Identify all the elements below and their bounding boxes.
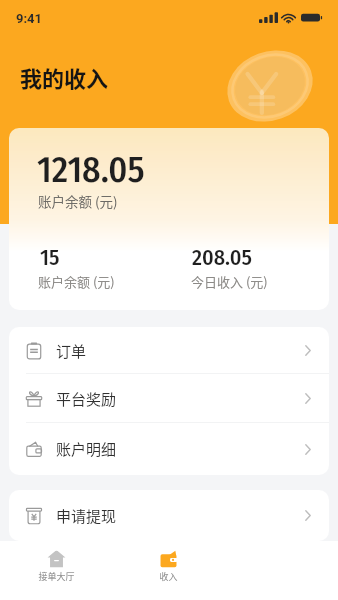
button[interactable]: 订单 — [9, 327, 329, 374]
staticText: 账户余额 (元) — [38, 272, 115, 291]
staticText: 平台奖励 — [56, 388, 117, 410]
staticText: 我的收入 — [20, 61, 109, 93]
staticText: 接单大厅 — [38, 570, 75, 583]
staticText: 今日收入 (元) — [191, 272, 268, 291]
staticText: 申请提现 — [56, 505, 117, 527]
button[interactable]: 申请提现 — [9, 490, 329, 541]
staticText: 订单 — [56, 340, 87, 362]
staticText: 208.05 — [192, 244, 252, 270]
staticText: 9:41 — [16, 11, 43, 26]
button[interactable]: 接单大厅 — [0, 541, 112, 600]
staticText: 15 — [40, 244, 60, 270]
button[interactable]: 收入 — [112, 541, 225, 600]
button[interactable]: 账户明细 — [9, 423, 329, 475]
button[interactable]: 平台奖励 — [9, 374, 329, 423]
staticText: 账户明细 — [56, 438, 117, 460]
staticText: 账户余额 (元) — [38, 191, 118, 211]
staticText: 1218.05 — [37, 148, 145, 191]
staticText: 收入 — [159, 570, 178, 583]
